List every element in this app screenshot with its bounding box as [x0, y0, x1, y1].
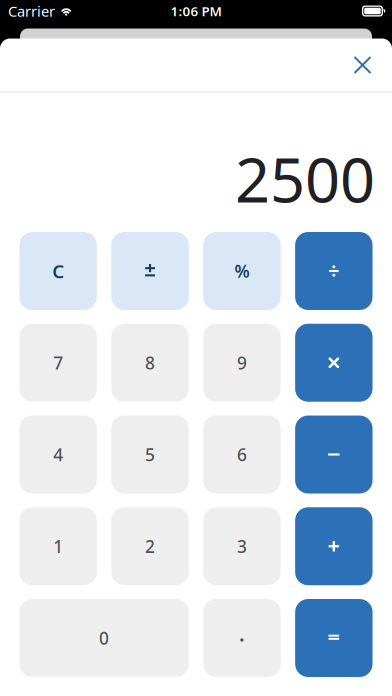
- staticText: %: [234, 259, 249, 282]
- staticText: 7: [53, 351, 63, 374]
- button[interactable]: 8: [111, 324, 189, 402]
- staticText: 2: [145, 535, 155, 558]
- button[interactable]: C: [19, 232, 97, 310]
- staticText: Carrier: [8, 1, 55, 21]
- button[interactable]: 3: [203, 507, 281, 585]
- button[interactable]: Plus minus: [111, 232, 189, 310]
- button[interactable]: 2: [111, 507, 189, 585]
- staticText: C: [52, 259, 64, 283]
- button[interactable]: Divide: [295, 232, 373, 310]
- button[interactable]: 0: [19, 599, 189, 677]
- staticText: 6: [237, 443, 247, 466]
- staticText: 0: [99, 626, 109, 649]
- button[interactable]: Close: [347, 50, 377, 80]
- button[interactable]: Add: [295, 507, 373, 585]
- button[interactable]: %: [203, 232, 281, 310]
- button[interactable]: 9: [203, 324, 281, 402]
- button[interactable]: 5: [111, 415, 189, 493]
- staticText: 1: [53, 535, 63, 558]
- staticText: 1:06 PM: [170, 2, 221, 20]
- button[interactable]: 7: [19, 324, 97, 402]
- staticText: 9: [237, 351, 247, 374]
- button[interactable]: Decimal point: [203, 599, 281, 677]
- button[interactable]: 4: [19, 415, 97, 493]
- staticText: 2500: [235, 138, 375, 219]
- staticText: 4: [53, 443, 63, 466]
- staticText: 3: [237, 535, 247, 558]
- button[interactable]: 6: [203, 415, 281, 493]
- button[interactable]: 1: [19, 507, 97, 585]
- button[interactable]: Subtract: [295, 415, 373, 493]
- button[interactable]: Multiply: [295, 324, 373, 402]
- staticText: 5: [145, 443, 155, 466]
- staticText: 8: [145, 351, 155, 374]
- button[interactable]: Equals: [295, 599, 373, 677]
